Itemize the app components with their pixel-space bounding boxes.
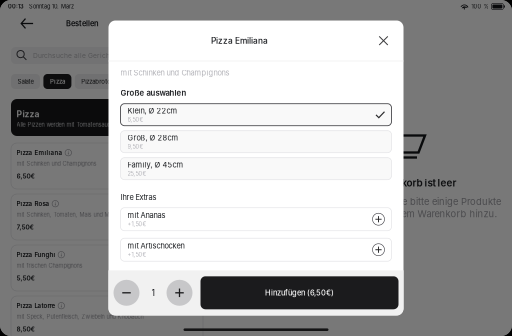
button[interactable]: Klein, Ø 22cm [120, 104, 391, 126]
staticText: Groß, Ø 28cm [127, 133, 178, 142]
staticText: 5,50€ [16, 274, 34, 282]
staticText: Hinzufügen (6,50€) [265, 288, 334, 297]
staticText: Pizza Emiliana [211, 36, 268, 46]
staticText: mit Schinken und Champignons [120, 68, 229, 77]
staticText: 7,50€ [16, 223, 33, 231]
staticText: mit Schinken und Champignons [16, 160, 96, 167]
staticText: Salate [17, 78, 33, 85]
button[interactable]: Pizza Latorre [11, 296, 203, 336]
staticText: Pizza Funghi [16, 251, 55, 258]
button[interactable]: Pizza Funghi [11, 245, 203, 291]
staticText: mit Artischocken [127, 241, 184, 250]
staticText: zu deinem Warenkorb hinzu. [368, 208, 497, 219]
button[interactable]: Pizza Emiliana [11, 143, 203, 189]
button[interactable]: Menge erhöhen [166, 280, 192, 306]
button[interactable]: Menge verringern [113, 280, 139, 306]
button[interactable]: mit Artischocken [120, 238, 391, 261]
button[interactable]: mit Ananas [120, 208, 391, 231]
staticText: Ihre Extras [120, 193, 156, 202]
staticText: Pizza [16, 109, 39, 119]
button[interactable]: Groß, Ø 28cm [120, 131, 391, 153]
staticText: 100 % [471, 3, 488, 10]
button[interactable]: Pizza Rosa [11, 194, 203, 240]
staticText: Klein, Ø 22cm [127, 106, 177, 115]
staticText: Alle Pizzen werden mit Tomatensauce und … [16, 121, 166, 128]
staticText: 6,50€ [127, 116, 143, 123]
staticText: Durchsuche alle Gerichte [33, 51, 116, 60]
staticText: Family, Ø 45cm [127, 160, 183, 169]
staticText: 9,50€ [127, 143, 143, 150]
button[interactable]: Family, Ø 45cm [120, 158, 391, 180]
staticText: Füge bitte einige Produkte [385, 196, 501, 207]
staticText: 8,50€ [16, 325, 34, 333]
staticText: Bestellen [66, 19, 99, 28]
staticText: mit Schinken, Tomaten, Mais und Mozzarel… [16, 211, 131, 218]
staticText: 25,50€ [127, 170, 146, 177]
staticText: 00:13 [8, 3, 24, 10]
staticText: Pizzabrötchen [81, 78, 121, 85]
staticText: Dein Warenkorb ist leer [345, 177, 456, 189]
staticText: mit Speck, Putenfleisch, Zwiebeln und Kn… [16, 313, 143, 320]
staticText: +1,50€ [127, 251, 146, 258]
staticText: +1,50€ [127, 221, 146, 228]
button[interactable]: Schließen [370, 28, 396, 54]
staticText: Pizza [50, 78, 65, 85]
staticText: Pizza Rosa [16, 200, 49, 207]
button[interactable]: Hinzufügen (6,50€) [200, 276, 398, 309]
staticText: Pizza Latorre [16, 302, 55, 309]
staticText: Pizza Emiliana [16, 149, 62, 156]
staticText: mit Ananas [127, 211, 165, 220]
button[interactable]: Zurück [17, 13, 37, 33]
staticText: Größe auswählen [120, 88, 186, 98]
staticText: Sonntag 10. März [29, 3, 74, 10]
button[interactable]: Salate [11, 74, 40, 89]
button[interactable]: Pizza [43, 74, 71, 89]
staticText: 1 [151, 288, 154, 298]
staticText: 6,50€ [16, 172, 34, 180]
staticText: mit frischen Champignons [16, 262, 82, 269]
button[interactable]: Pizzabrötchen [75, 74, 128, 89]
